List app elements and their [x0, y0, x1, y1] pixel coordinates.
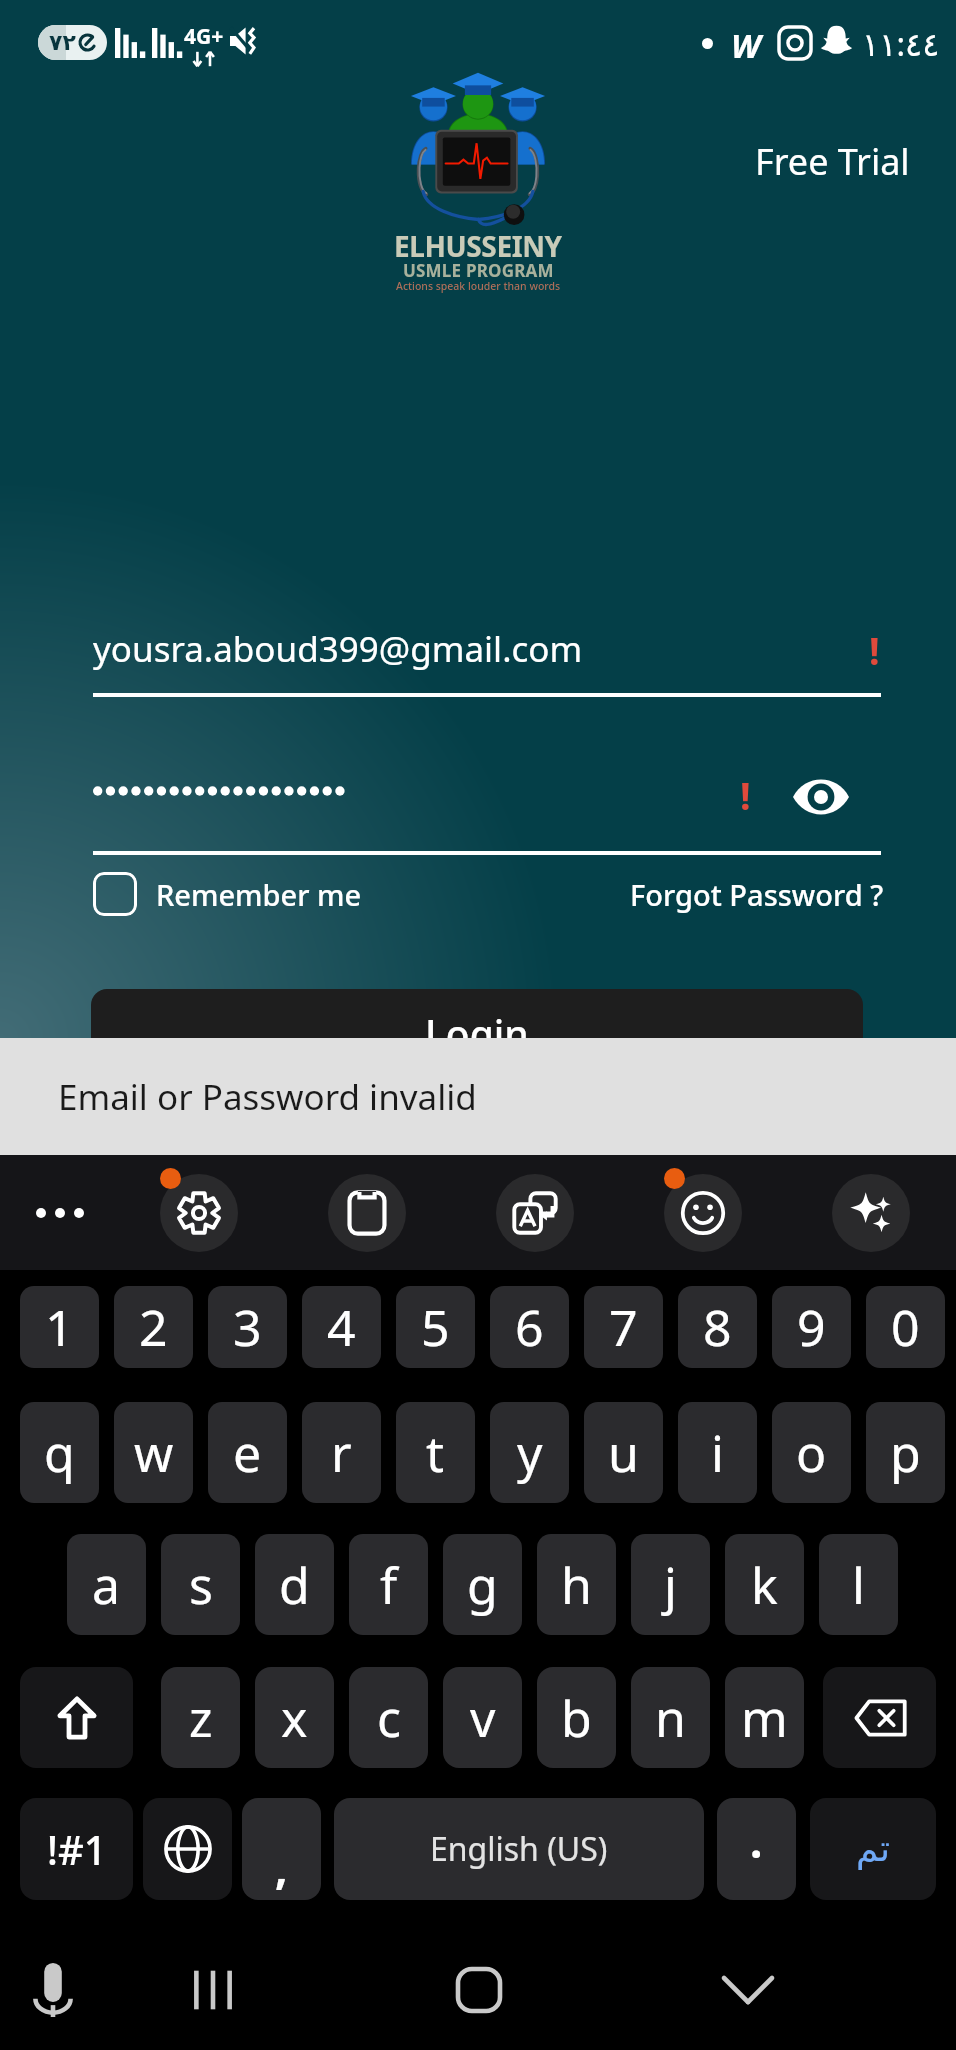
- button[interactable]: Backspace: [823, 1667, 936, 1768]
- button[interactable]: d: [255, 1534, 334, 1635]
- staticText: 6: [515, 1293, 544, 1361]
- button[interactable]: o: [772, 1402, 851, 1503]
- staticText: f: [380, 1551, 398, 1619]
- button[interactable]: r: [302, 1402, 381, 1503]
- staticText: تم: [856, 1828, 890, 1870]
- staticText: USMLE PROGRAM: [403, 259, 554, 282]
- staticText: W: [731, 23, 761, 68]
- button[interactable]: Hide keyboard: [695, 1930, 800, 2050]
- button[interactable]: 2: [114, 1286, 193, 1368]
- button[interactable]: Keyboard tool: [496, 1174, 574, 1252]
- button[interactable]: Shift: [20, 1667, 133, 1768]
- button[interactable]: q: [20, 1402, 99, 1503]
- button[interactable]: x: [255, 1667, 334, 1768]
- staticText: !: [869, 624, 880, 676]
- staticText: !#1: [47, 1822, 107, 1876]
- staticText: .: [750, 1811, 763, 1871]
- staticText: English (US): [430, 1827, 608, 1871]
- staticText: yousra.aboud399@gmail.com: [93, 625, 583, 673]
- staticText: y: [517, 1419, 543, 1487]
- staticText: a: [92, 1551, 121, 1619]
- staticText: Actions speak louder than words: [396, 279, 561, 293]
- button[interactable]: Keyboard tool: [160, 1174, 238, 1252]
- staticText: ٧٢: [49, 30, 76, 56]
- staticText: 0: [891, 1293, 920, 1361]
- staticText: Remember me: [156, 875, 362, 914]
- button[interactable]: 4: [302, 1286, 381, 1368]
- button[interactable]: b: [537, 1667, 616, 1768]
- button[interactable]: yousra.aboud399@gmail.com: [93, 606, 853, 688]
- button[interactable]: More options: [22, 1181, 98, 1245]
- button[interactable]: m: [725, 1667, 804, 1768]
- button[interactable]: z: [161, 1667, 240, 1768]
- button[interactable]: Home: [426, 1930, 531, 2050]
- button[interactable]: 5: [396, 1286, 475, 1368]
- button[interactable]: w: [114, 1402, 193, 1503]
- button[interactable]: v: [443, 1667, 522, 1768]
- button[interactable]: Remember me: [93, 870, 362, 918]
- button[interactable]: c: [349, 1667, 428, 1768]
- staticText: ,: [275, 1837, 288, 1897]
- button[interactable]: .: [717, 1798, 796, 1900]
- staticText: Forgot Password ?: [630, 875, 884, 914]
- staticText: u: [608, 1419, 639, 1487]
- button[interactable]: 0: [866, 1286, 945, 1368]
- button[interactable]: Login: [91, 989, 863, 1094]
- staticText: Login: [425, 1007, 529, 1060]
- staticText: 4: [327, 1293, 356, 1361]
- button[interactable]: Change language: [143, 1798, 232, 1900]
- button[interactable]: English (US): [334, 1798, 704, 1900]
- button[interactable]: j: [631, 1534, 710, 1635]
- staticText: l: [852, 1551, 865, 1619]
- button[interactable]: k: [725, 1534, 804, 1635]
- staticText: o: [796, 1419, 827, 1487]
- button[interactable]: Free Trial: [743, 129, 922, 194]
- staticText: p: [890, 1419, 921, 1487]
- staticText: b: [561, 1684, 592, 1752]
- staticText: Email or Password invalid: [58, 1073, 477, 1121]
- button[interactable]: 3: [208, 1286, 287, 1368]
- button[interactable]: تم: [810, 1798, 936, 1900]
- button[interactable]: 6: [490, 1286, 569, 1368]
- button[interactable]: 7: [584, 1286, 663, 1368]
- staticText: d: [279, 1551, 310, 1619]
- button[interactable]: h: [537, 1534, 616, 1635]
- button[interactable]: l: [819, 1534, 898, 1635]
- button[interactable]: 1: [20, 1286, 99, 1368]
- button[interactable]: n: [631, 1667, 710, 1768]
- staticText: 1: [45, 1293, 74, 1361]
- button[interactable]: u: [584, 1402, 663, 1503]
- button[interactable]: p: [866, 1402, 945, 1503]
- staticText: h: [561, 1551, 592, 1619]
- staticText: 8: [703, 1293, 732, 1361]
- staticText: 4G+: [184, 22, 224, 51]
- button[interactable]: Recents: [160, 1930, 265, 2050]
- button[interactable]: Forgot Password ?: [630, 870, 884, 918]
- staticText: ١١:٤٤: [862, 22, 940, 66]
- button[interactable]: i: [678, 1402, 757, 1503]
- button[interactable]: f: [349, 1534, 428, 1635]
- button[interactable]: Keyboard tool: [832, 1174, 910, 1252]
- button[interactable]: Show password: [790, 768, 852, 826]
- staticText: t: [426, 1419, 445, 1487]
- staticText: Free Trial: [755, 137, 910, 186]
- button[interactable]: 8: [678, 1286, 757, 1368]
- staticText: x: [281, 1684, 308, 1752]
- button[interactable]: Keyboard tool: [328, 1174, 406, 1252]
- staticText: r: [331, 1419, 352, 1487]
- staticText: w: [134, 1419, 174, 1487]
- button[interactable]: ,: [242, 1798, 321, 1900]
- staticText: s: [189, 1551, 213, 1619]
- button[interactable]: !#1: [20, 1798, 133, 1900]
- button[interactable]: Password: [93, 751, 723, 827]
- staticText: k: [751, 1551, 778, 1619]
- button[interactable]: a: [67, 1534, 146, 1635]
- button[interactable]: t: [396, 1402, 475, 1503]
- button[interactable]: 9: [772, 1286, 851, 1368]
- button[interactable]: y: [490, 1402, 569, 1503]
- button[interactable]: Keyboard tool: [664, 1174, 742, 1252]
- button[interactable]: s: [161, 1534, 240, 1635]
- button[interactable]: e: [208, 1402, 287, 1503]
- button[interactable]: g: [443, 1534, 522, 1635]
- button[interactable]: Voice input: [0, 1930, 105, 2050]
